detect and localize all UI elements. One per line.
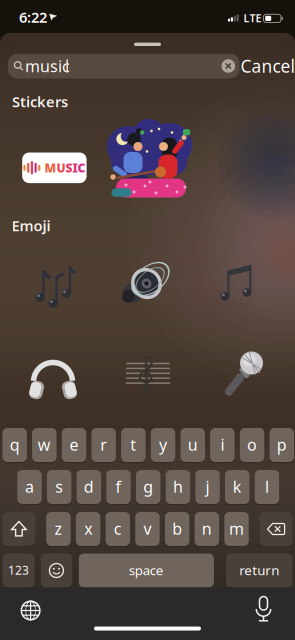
button[interactable]: Clear text [220,58,236,74]
button[interactable]: space [79,553,214,587]
button[interactable]: o [240,428,264,462]
button[interactable]: Cancel [240,54,294,77]
button[interactable]: g [136,470,160,504]
staticText: y [159,434,167,455]
button[interactable]: x [76,512,100,546]
button[interactable]: return [226,553,293,587]
button[interactable]: b [165,512,189,546]
button[interactable]: Musical score emoji [0,0,295,640]
button[interactable]: j [195,470,220,504]
staticText: k [233,476,242,497]
staticText: o [247,434,257,455]
staticText: j [206,476,210,497]
button[interactable]: Emoji [41,553,72,587]
button[interactable]: Speaker emoji [0,0,295,640]
button[interactable]: m [224,512,249,546]
staticText: n [202,518,212,539]
button[interactable]: Microphone emoji [0,0,295,640]
button[interactable]: z [46,512,71,546]
button[interactable]: Music night sticker [0,0,295,640]
button[interactable]: Dictate [251,597,275,622]
staticText: q [10,434,20,455]
staticText: d [84,476,94,497]
button[interactable]: f [106,470,131,504]
button[interactable]: p [269,428,294,462]
button[interactable]: Next keyboard [21,600,41,620]
button[interactable]: a [17,470,42,504]
button[interactable]: Headphones emoji [0,0,295,640]
staticText: b [172,518,182,539]
staticText: c [114,518,122,539]
staticText: h [173,476,183,497]
button[interactable]: k [225,470,249,504]
staticText: s [55,476,63,497]
staticText: C [77,160,85,176]
button[interactable]: i [210,428,235,462]
button[interactable]: h [166,470,190,504]
staticText: I [72,160,77,176]
button[interactable]: s [47,470,71,504]
staticText: 123 [8,562,29,578]
button[interactable]: e [62,428,86,462]
button[interactable]: n [195,512,219,546]
staticText: Emoji [11,216,50,235]
staticText: x [84,518,92,539]
staticText: g [143,476,153,497]
staticText: f [115,476,121,497]
button[interactable]: v [135,512,160,546]
staticText: u [188,434,198,455]
staticText: t [130,434,136,455]
staticText: w [38,434,51,455]
button[interactable]: q [2,428,27,462]
button[interactable]: 123 [2,553,35,587]
staticText: S [65,160,72,176]
button[interactable]: r [91,428,116,462]
staticText: a [25,476,34,497]
staticText: Cancel [240,54,294,77]
button[interactable]: w [32,428,57,462]
button[interactable]: y [151,428,175,462]
staticText: U [56,160,65,176]
staticText: LTE [243,11,261,25]
staticText: v [143,518,151,539]
staticText: i [220,434,224,455]
button[interactable]: Musical notes emoji [0,0,295,640]
staticText: p [277,434,287,455]
button[interactable]: MUSIC sticker [22,152,87,183]
button[interactable]: d [77,470,101,504]
staticText: e [69,434,78,455]
staticText: Stickers [12,92,68,111]
button[interactable]: Musical note emoji [0,0,295,640]
button[interactable]: Shift [2,512,35,546]
staticText: z [54,518,62,539]
staticText: l [265,476,269,497]
button[interactable]: Delete [260,512,293,546]
staticText: 6:22 [19,7,47,27]
button[interactable]: u [180,428,205,462]
staticText: m [229,518,244,539]
staticText: M [44,160,56,176]
staticText: r [100,434,107,455]
staticText: music [25,55,70,77]
staticText: space [129,561,164,579]
button[interactable]: t [121,428,146,462]
staticText: return [239,561,279,579]
button[interactable]: c [106,512,130,546]
button[interactable]: Drag handle [134,43,161,46]
button[interactable]: l [255,470,279,504]
